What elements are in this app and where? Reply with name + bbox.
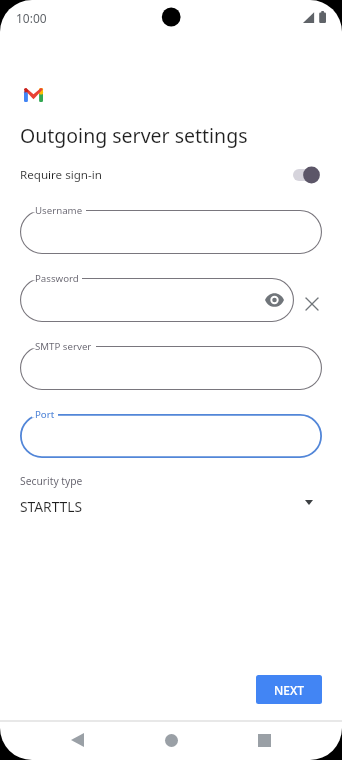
button[interactable]: Show password (264, 288, 286, 310)
staticText: Outgoing server settings (20, 122, 248, 149)
staticText: 10:00 (16, 10, 47, 26)
staticText: Username (35, 204, 83, 217)
staticText: Password (35, 272, 79, 285)
button[interactable]: Username (20, 210, 322, 254)
button[interactable]: SMTP server (20, 346, 322, 390)
staticText: SMTP server (35, 340, 92, 353)
button[interactable]: NEXT (256, 675, 322, 704)
button[interactable]: Back (30, 720, 124, 760)
button[interactable]: Clear (300, 292, 324, 316)
button[interactable]: Password (20, 278, 294, 322)
button[interactable]: Home (124, 720, 218, 760)
staticText: Require sign-in (20, 167, 102, 183)
button[interactable]: Port (20, 414, 322, 458)
button[interactable]: Require sign-in (0, 162, 342, 188)
staticText: Port (35, 408, 55, 421)
button[interactable] (293, 166, 326, 184)
staticText: Security type (20, 474, 83, 488)
button[interactable]: Recents (217, 720, 311, 760)
button[interactable]: Security type (0, 474, 342, 520)
staticText: NEXT (274, 682, 305, 698)
staticText: STARTTLS (20, 497, 83, 516)
